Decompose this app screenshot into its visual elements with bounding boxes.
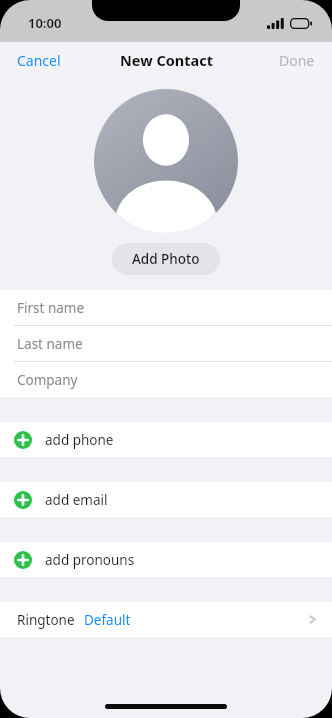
button[interactable]: Contact photo placeholder: [94, 89, 238, 233]
button[interactable]: Company: [0, 362, 332, 397]
staticText: Default: [84, 611, 131, 629]
staticText: Add Photo: [132, 250, 200, 268]
button[interactable]: Add Photo: [112, 243, 220, 275]
button[interactable]: add pronouns: [0, 542, 332, 577]
staticText: Last name: [17, 335, 83, 353]
button[interactable]: add email: [0, 482, 332, 517]
staticText: 10:00: [28, 14, 62, 32]
staticText: add pronouns: [45, 551, 135, 569]
staticText: New Contact: [120, 50, 213, 70]
staticText: First name: [17, 299, 85, 317]
other: Cellular signal: [267, 18, 284, 29]
staticText: Ringtone: [17, 611, 75, 629]
button[interactable]: Cancel: [0, 45, 78, 76]
other: Battery: [290, 18, 312, 29]
staticText: Cancel: [17, 51, 61, 70]
button[interactable]: Done: [262, 45, 332, 76]
staticText: Company: [17, 371, 78, 389]
staticText: add email: [45, 491, 108, 509]
staticText: Done: [279, 51, 315, 70]
button[interactable]: add phone: [0, 422, 332, 457]
button[interactable]: First name: [0, 290, 332, 326]
button[interactable]: Ringtone: [0, 602, 332, 637]
staticText: add phone: [45, 431, 114, 449]
button[interactable]: Last name: [0, 326, 332, 362]
